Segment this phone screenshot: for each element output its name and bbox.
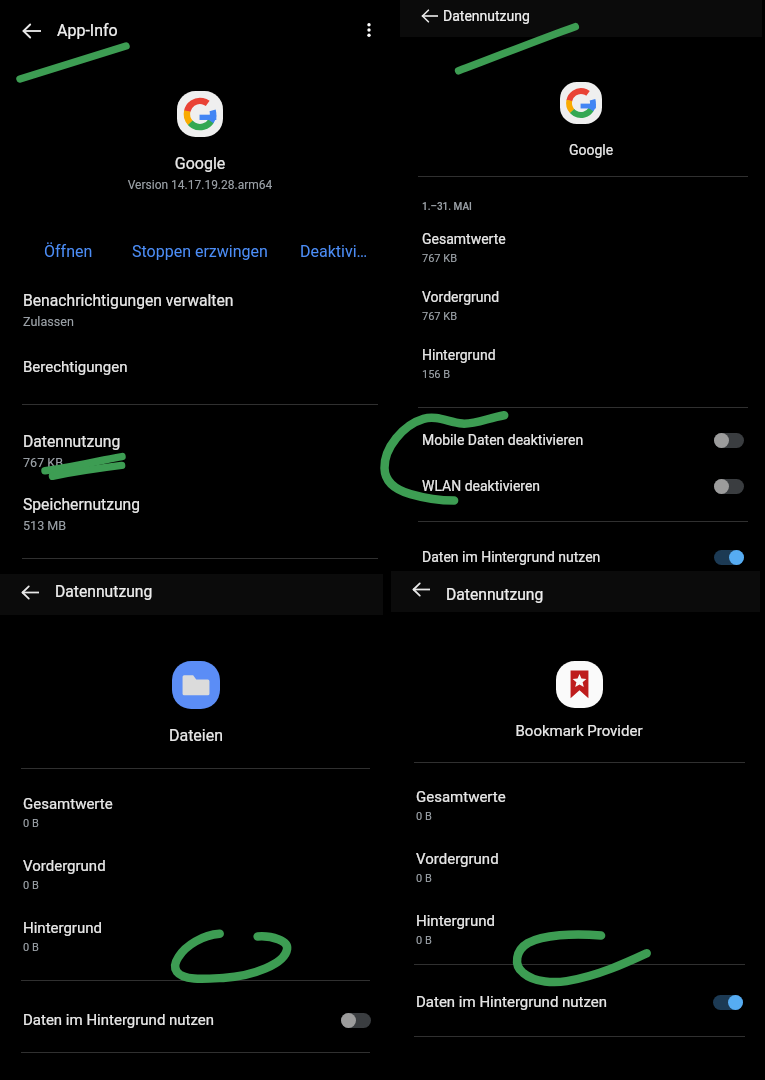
staticText: Gesamtwerte	[422, 231, 506, 247]
staticText: 767 KB	[422, 310, 458, 323]
button[interactable]: Gesamtwerte	[416, 788, 676, 806]
staticText: Gesamtwerte	[23, 795, 113, 813]
button[interactable]: Back	[14, 13, 50, 49]
button[interactable]: More options	[352, 13, 386, 47]
button[interactable]: Vordergrund	[416, 850, 676, 868]
staticText: Zulassen	[23, 314, 74, 329]
staticText: Datennutzung	[55, 582, 153, 600]
button[interactable]: Back	[14, 576, 47, 609]
staticText: Google	[100, 154, 300, 173]
button[interactable]: Vordergrund	[23, 857, 283, 875]
button[interactable]: Hintergrund	[23, 919, 283, 937]
staticText: 1.–31. MAI	[422, 201, 472, 213]
staticText: Google	[400, 142, 765, 158]
staticText: Vordergrund	[422, 289, 500, 305]
staticText: Öffnen	[44, 242, 93, 261]
button[interactable]: Benachrichtigungen verwalten	[23, 291, 283, 309]
staticText: App-Info	[57, 21, 118, 40]
staticText: Hintergrund	[422, 347, 496, 363]
staticText: Datennutzung	[446, 585, 544, 603]
staticText: Version 14.17.19.28.arm64	[80, 178, 320, 192]
staticText: Gesamtwerte	[416, 788, 506, 806]
button[interactable]: Speichernutzung	[23, 495, 283, 513]
staticText: 0 B	[416, 934, 432, 947]
button[interactable]: Back	[405, 573, 438, 606]
staticText: Datennutzung	[443, 8, 530, 24]
staticText: 156 B	[422, 368, 451, 381]
button[interactable]: Daten im Hintergrund nutzen	[23, 1007, 371, 1033]
staticText: Hintergrund	[416, 912, 495, 930]
staticText: Berechtigungen	[23, 358, 128, 376]
button[interactable]: Öffnen	[14, 236, 122, 266]
staticText: 513 MB	[23, 518, 67, 533]
button[interactable]: Hintergrund	[416, 912, 676, 930]
staticText: 0 B	[23, 879, 39, 892]
staticText: 0 B	[416, 810, 432, 823]
staticText: 767 KB	[23, 455, 64, 470]
staticText: 0 B	[23, 817, 39, 830]
button[interactable]: WLAN deaktivieren	[422, 473, 744, 499]
staticText: Vordergrund	[23, 857, 106, 875]
staticText: Dateien	[96, 726, 296, 745]
button[interactable]: Vordergrund	[422, 289, 682, 305]
button[interactable]: Mobile Daten deaktivieren	[422, 427, 744, 453]
staticText: Mobile Daten deaktivieren	[422, 432, 584, 448]
staticText: Speichernutzung	[23, 495, 141, 513]
button[interactable]: Gesamtwerte	[23, 795, 283, 813]
button[interactable]: Gesamtwerte	[422, 231, 682, 247]
staticText: 767 KB	[422, 252, 458, 265]
staticText: Daten im Hintergrund nutzen	[416, 993, 608, 1011]
button[interactable]: Stoppen erzwingen	[126, 236, 274, 266]
button[interactable]: Back	[414, 0, 446, 32]
button[interactable]: Datennutzung	[23, 432, 283, 450]
staticText: Daten im Hintergrund nutzen	[422, 549, 601, 565]
staticText: 0 B	[416, 872, 432, 885]
staticText: Deaktivi…	[300, 242, 368, 261]
button[interactable]: Deaktivi…	[300, 236, 380, 266]
staticText: Bookmark Provider	[469, 722, 689, 740]
button[interactable]: Hintergrund	[422, 347, 682, 363]
staticText: 0 B	[23, 941, 39, 954]
staticText: Datennutzung	[23, 432, 121, 450]
staticText: Benachrichtigungen verwalten	[23, 291, 234, 309]
staticText: Daten im Hintergrund nutzen	[23, 1011, 215, 1029]
staticText: WLAN deaktivieren	[422, 478, 541, 494]
staticText: Vordergrund	[416, 850, 499, 868]
button[interactable]: Daten im Hintergrund nutzen	[422, 544, 744, 570]
button[interactable]: Berechtigungen	[0, 344, 383, 386]
staticText: Stoppen erzwingen	[132, 242, 268, 261]
button[interactable]: Daten im Hintergrund nutzen	[416, 989, 743, 1015]
staticText: Hintergrund	[23, 919, 102, 937]
